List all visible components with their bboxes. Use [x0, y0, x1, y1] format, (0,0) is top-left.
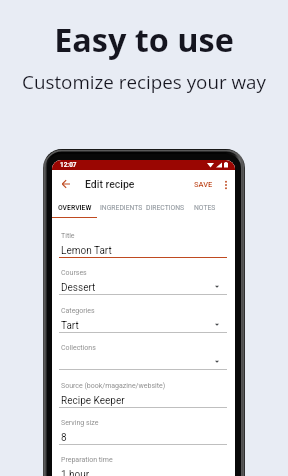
button[interactable]: DIRECTIONS	[144, 198, 186, 217]
button[interactable]: Courses	[59, 269, 227, 295]
button[interactable]: Preparation time	[59, 456, 227, 476]
button[interactable]: More options	[217, 176, 234, 193]
staticText: Dessert	[61, 282, 96, 294]
staticText: NOTES	[194, 204, 216, 212]
staticText: Edit recipe	[85, 178, 135, 190]
staticText: Collections	[61, 344, 96, 352]
staticText: SAVE	[194, 180, 213, 189]
button[interactable]: INGREDIENTS	[98, 198, 144, 217]
staticText: Source (book/magazine/website)	[61, 382, 166, 390]
button[interactable]: OVERVIEW	[52, 198, 98, 217]
button[interactable]: Back	[56, 174, 75, 193]
staticText: DIRECTIONS	[146, 204, 185, 212]
button[interactable]: SAVE	[190, 175, 217, 194]
staticText: Categories	[61, 307, 95, 315]
button[interactable]: Categories	[59, 307, 227, 333]
staticText: Preparation time	[61, 456, 113, 464]
staticText: Serving size	[61, 419, 99, 427]
staticText: Lemon Tart	[61, 245, 112, 257]
button[interactable]: Serving size	[59, 419, 227, 445]
staticText: 12:07	[60, 161, 77, 169]
staticText: Courses	[61, 269, 87, 277]
staticText: OVERVIEW	[58, 204, 92, 212]
button[interactable]: Collections	[59, 344, 227, 370]
button[interactable]: NOTES	[186, 198, 224, 217]
staticText: 1 hour	[61, 469, 90, 476]
staticText: Tart	[61, 320, 79, 332]
button[interactable]: Source (book/magazine/website)	[59, 382, 227, 408]
staticText: INGREDIENTS	[100, 204, 143, 212]
staticText: Title	[61, 232, 75, 240]
staticText: Customize recipes your way	[0, 69, 288, 95]
button[interactable]: Title	[59, 232, 227, 258]
staticText: 8	[61, 432, 67, 444]
staticText: Recipe Keeper	[61, 395, 125, 407]
staticText: Easy to use	[0, 17, 288, 61]
